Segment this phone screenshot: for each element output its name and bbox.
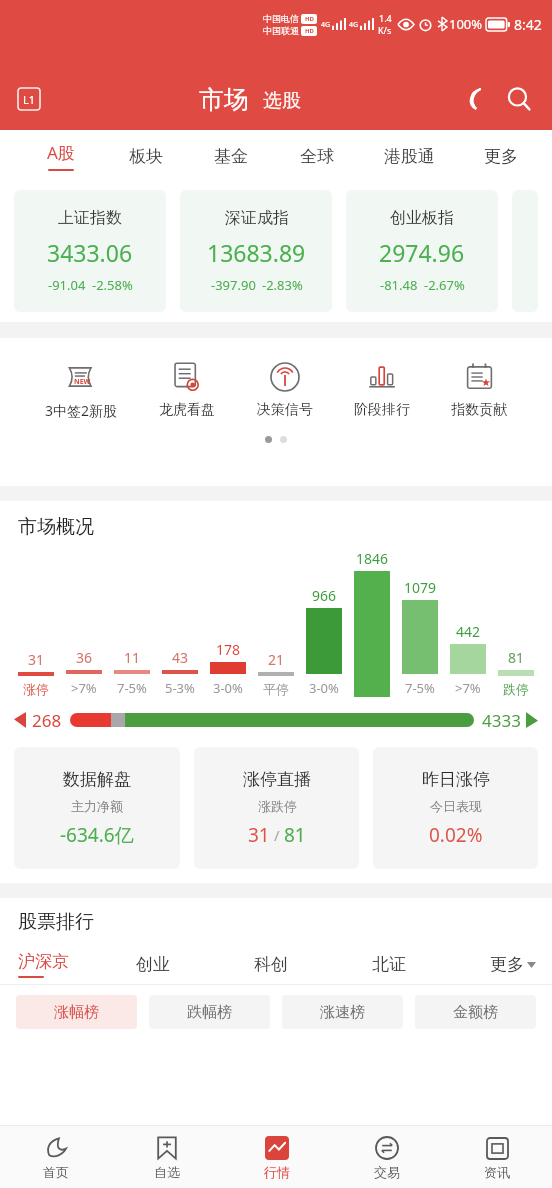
staticText: 昨日涨停 bbox=[422, 769, 490, 790]
staticText: K/s bbox=[378, 24, 392, 36]
staticText: 深证成指 bbox=[225, 208, 289, 228]
button[interactable]: 北证 bbox=[372, 944, 490, 984]
staticText: 8:42 bbox=[514, 15, 542, 34]
button[interactable]: 全球 bbox=[274, 130, 360, 182]
staticText: 966 bbox=[312, 586, 337, 605]
staticText: -634.6亿 bbox=[60, 822, 134, 848]
button[interactable]: 基金 bbox=[188, 130, 274, 182]
button[interactable]: Night mode bbox=[458, 82, 492, 116]
staticText: 11 bbox=[124, 648, 141, 667]
staticText: 股票排行 bbox=[18, 910, 94, 934]
button[interactable]: 更多 bbox=[490, 954, 536, 975]
staticText: 跌幅榜 bbox=[187, 1003, 232, 1022]
button[interactable]: 龙虎看盘 bbox=[157, 360, 217, 419]
staticText: 上证指数 bbox=[58, 208, 122, 228]
staticText: 决策信号 bbox=[257, 401, 313, 419]
staticText: 创业板指 bbox=[390, 208, 454, 228]
staticText: 行情 bbox=[264, 1164, 290, 1180]
button[interactable]: A股 bbox=[18, 130, 103, 182]
staticText: 中国电信 bbox=[263, 13, 299, 24]
staticText: -81.48 bbox=[380, 276, 418, 294]
button[interactable]: 深证成指 bbox=[180, 190, 332, 312]
staticText: -2.58% bbox=[92, 276, 133, 294]
staticText: 创业 bbox=[136, 954, 170, 975]
button[interactable]: 交易 bbox=[332, 1126, 442, 1188]
staticText: 指数贡献 bbox=[451, 401, 507, 419]
button[interactable]: 市场 bbox=[199, 84, 249, 115]
staticText: 科创 bbox=[254, 954, 288, 975]
button[interactable]: 选股 bbox=[263, 89, 301, 115]
button[interactable]: 板块 bbox=[103, 130, 188, 182]
button[interactable]: 沪深京 bbox=[18, 944, 136, 984]
staticText: 港股通 bbox=[384, 146, 435, 167]
staticText: 442 bbox=[456, 622, 481, 641]
staticText: 更多 bbox=[484, 146, 518, 167]
staticText: 1846 bbox=[356, 549, 389, 568]
staticText: 21 bbox=[268, 650, 285, 669]
button[interactable]: 数据解盘 bbox=[14, 747, 180, 869]
staticText: 自选 bbox=[154, 1164, 180, 1180]
staticText: 主力净额 bbox=[71, 798, 123, 814]
button[interactable]: 创业 bbox=[136, 944, 254, 984]
button[interactable]: 金额榜 bbox=[415, 995, 536, 1029]
staticText: 100% bbox=[449, 15, 483, 33]
staticText: 全球 bbox=[300, 146, 334, 167]
staticText: 36 bbox=[76, 648, 93, 667]
staticText: -2.67% bbox=[424, 276, 465, 294]
button[interactable]: NEW bbox=[43, 360, 120, 420]
button[interactable]: 行情 bbox=[222, 1126, 332, 1188]
button[interactable]: 创业板指 bbox=[346, 190, 498, 312]
staticText: 更多 bbox=[490, 954, 524, 975]
staticText: HD bbox=[305, 15, 314, 23]
staticText: 阶段排行 bbox=[354, 401, 410, 419]
staticText: 178 bbox=[216, 640, 241, 659]
button[interactable]: 昨日涨停 bbox=[373, 747, 538, 869]
staticText: 数据解盘 bbox=[63, 769, 131, 790]
staticText: -397.90 bbox=[211, 276, 256, 294]
button[interactable]: 涨幅榜 bbox=[16, 995, 137, 1029]
button[interactable]: 指数贡献 bbox=[449, 360, 509, 419]
staticText: 板块 bbox=[129, 146, 163, 167]
button[interactable]: 决策信号 bbox=[255, 360, 315, 419]
button[interactable]: 资讯 bbox=[442, 1126, 552, 1188]
button[interactable]: 涨速榜 bbox=[282, 995, 403, 1029]
button[interactable]: 自选 bbox=[111, 1126, 222, 1188]
button[interactable]: 更多 bbox=[458, 130, 544, 182]
staticText: >7% bbox=[71, 679, 97, 697]
staticText: -91.04 bbox=[48, 276, 86, 294]
button[interactable]: 上证指数 bbox=[14, 190, 166, 312]
staticText: 4G bbox=[349, 20, 359, 30]
button[interactable]: 跌幅榜 bbox=[149, 995, 270, 1029]
staticText: 13683.89 bbox=[207, 237, 306, 268]
button[interactable]: L1 level bbox=[16, 86, 42, 112]
staticText: 3-0% bbox=[213, 679, 243, 697]
staticText: 资讯 bbox=[484, 1164, 510, 1180]
staticText: >7% bbox=[455, 679, 481, 697]
button[interactable]: 阶段排行 bbox=[352, 360, 412, 419]
button[interactable]: 港股通 bbox=[360, 130, 458, 182]
staticText: 1.4 bbox=[379, 12, 392, 24]
staticText: 跌停 bbox=[503, 681, 529, 697]
staticText: A股 bbox=[47, 141, 75, 164]
staticText: 涨速榜 bbox=[320, 1003, 365, 1022]
staticText: 交易 bbox=[374, 1164, 400, 1180]
staticText: 市场 bbox=[199, 84, 249, 115]
staticText: 7-5% bbox=[117, 679, 147, 697]
staticText: 3中签2新股 bbox=[45, 401, 118, 420]
staticText: 1079 bbox=[404, 578, 437, 597]
button[interactable]: 首页 bbox=[0, 1126, 111, 1188]
staticText: 0.02% bbox=[429, 822, 483, 848]
button[interactable]: 涨停直播 bbox=[194, 747, 359, 869]
staticText: NEW bbox=[74, 377, 91, 387]
button[interactable]: 科创 bbox=[254, 944, 372, 984]
staticText: 北证 bbox=[372, 954, 406, 975]
staticText: 4333 bbox=[482, 709, 521, 732]
staticText: 3433.06 bbox=[47, 237, 133, 268]
staticText: / bbox=[270, 825, 284, 845]
button[interactable]: Search bbox=[502, 82, 536, 116]
staticText: 涨停直播 bbox=[243, 769, 311, 790]
staticText: L1 bbox=[23, 92, 36, 107]
staticText: 今日表现 bbox=[430, 798, 482, 814]
staticText: 首页 bbox=[43, 1164, 69, 1180]
